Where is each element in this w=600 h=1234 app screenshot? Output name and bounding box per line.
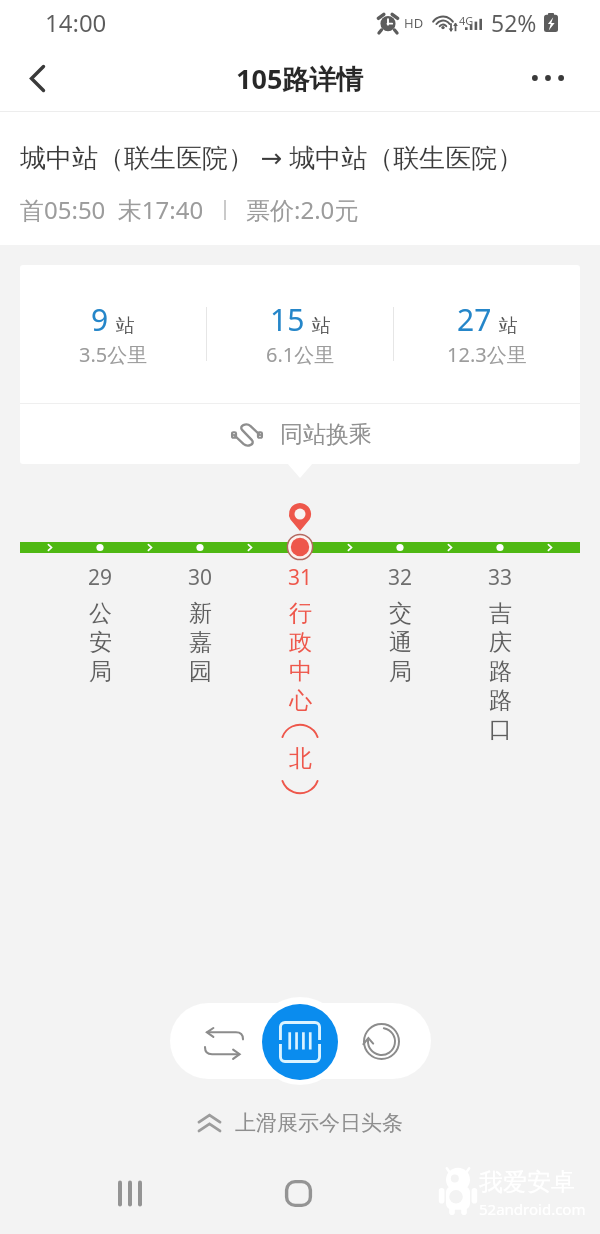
staticText: 9 (91, 299, 109, 340)
button[interactable]: Bus card (262, 1004, 338, 1080)
staticText: 路 (489, 657, 512, 686)
staticText: 29 (88, 563, 113, 592)
staticText: 15 (270, 299, 305, 340)
staticText: 新 (189, 599, 212, 628)
staticText: 公 (89, 599, 112, 628)
staticText: 32 (388, 563, 413, 592)
staticText: 首05:50 末17:40 (20, 193, 204, 226)
staticText: 局 (89, 657, 112, 686)
staticText: 中 (289, 657, 312, 686)
staticText: 嘉 (189, 628, 212, 657)
button[interactable]: Swap direction (199, 1016, 249, 1066)
staticText: 站 (116, 314, 135, 338)
staticText: 同站换乘 (280, 420, 372, 449)
staticText: 路 (489, 686, 512, 715)
staticText: 安 (89, 628, 112, 657)
staticText: 31 (288, 563, 313, 592)
staticText: 票价:2.0元 (246, 193, 359, 226)
staticText: 30 (188, 563, 213, 592)
staticText: 城中站（联生医院） → 城中站（联生医院） (20, 139, 524, 175)
staticText: 站 (312, 314, 331, 338)
staticText: 庆 (489, 628, 512, 657)
button[interactable]: 同站换乘 (20, 404, 580, 464)
staticText: 3.5公里 (79, 341, 148, 368)
button[interactable]: 9 (20, 265, 206, 403)
staticText: 通 (389, 628, 412, 657)
button[interactable]: Recent apps (102, 1165, 158, 1221)
button[interactable]: Refresh (356, 1016, 406, 1066)
staticText: 北 (289, 744, 312, 773)
staticText: 交 (389, 599, 412, 628)
staticText: 33 (488, 563, 513, 592)
staticText: 12.3公里 (447, 341, 527, 368)
staticText: 4G (459, 13, 474, 28)
staticText: 站 (499, 314, 518, 338)
staticText: 行 (289, 599, 312, 628)
button[interactable]: More options (511, 45, 585, 112)
button[interactable]: 27 (394, 265, 580, 403)
button[interactable]: 上滑展示今日头条 (197, 1110, 403, 1136)
staticText: 14:00 (45, 6, 107, 39)
staticText: 105路详情 (236, 60, 364, 97)
staticText: 我爱安卓 (479, 1167, 575, 1197)
staticText: 吉 (489, 599, 512, 628)
staticText: 园 (189, 657, 212, 686)
staticText: 局 (389, 657, 412, 686)
staticText: 52% (491, 7, 537, 38)
staticText: 6.1公里 (266, 341, 335, 368)
staticText: 政 (289, 628, 312, 657)
button[interactable]: Back (0, 45, 74, 112)
staticText: 口 (489, 715, 512, 744)
button[interactable]: Home (270, 1165, 326, 1221)
staticText: HD (404, 14, 424, 32)
staticText: 52android.com (479, 1199, 586, 1219)
staticText: 心 (289, 686, 312, 715)
button[interactable]: 15 (207, 265, 393, 403)
staticText: 上滑展示今日头条 (235, 1110, 403, 1136)
staticText: 27 (457, 299, 492, 340)
